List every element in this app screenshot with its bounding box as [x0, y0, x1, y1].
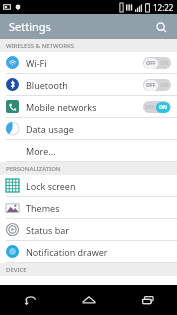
staticText: Themes [26, 202, 60, 214]
staticText: Bluetooth [26, 79, 68, 91]
button[interactable]: Wi-Fi [0, 52, 177, 74]
staticText: PERSONALIZATION [6, 165, 61, 173]
staticText: ON [160, 60, 169, 67]
staticText: ON [159, 104, 168, 111]
staticText: OFF [146, 60, 156, 67]
button[interactable]: Status bar [0, 219, 177, 241]
button[interactable]: Back [0, 285, 59, 315]
button[interactable]: More... [0, 140, 177, 162]
button[interactable]: Themes [0, 197, 177, 219]
staticText: Settings [9, 19, 51, 34]
staticText: Wi-Fi [26, 57, 47, 69]
staticText: More... [26, 145, 56, 157]
staticText: OFF [146, 82, 156, 89]
staticText: DEVICE [6, 266, 27, 274]
button[interactable]: Toggle on [143, 101, 171, 113]
button[interactable]: Notification drawer [0, 241, 177, 263]
button[interactable]: Lock screen [0, 175, 177, 197]
button[interactable]: Bluetooth [0, 74, 177, 96]
button[interactable]: Recent apps [118, 285, 177, 315]
staticText: Mobile networks [26, 101, 97, 113]
staticText: Status bar [26, 224, 70, 236]
staticText: Data usage [26, 123, 74, 135]
staticText: Lock screen [26, 180, 76, 192]
button[interactable]: Mobile networks [0, 96, 177, 118]
staticText: Notification drawer [26, 246, 108, 258]
button[interactable]: Toggle off [143, 57, 171, 69]
staticText: ON [160, 82, 169, 89]
staticText: ON [160, 104, 169, 111]
staticText: 12:22 [153, 2, 174, 13]
staticText: WIRELESS & NETWORKS [6, 42, 75, 50]
staticText: OFF [145, 60, 155, 67]
button[interactable]: Search [151, 17, 171, 37]
button[interactable]: Toggle off [143, 79, 171, 91]
button[interactable]: Home [59, 285, 118, 315]
staticText: OFF [145, 82, 155, 89]
button[interactable]: Data usage [0, 118, 177, 140]
staticText: OFF [145, 104, 155, 111]
